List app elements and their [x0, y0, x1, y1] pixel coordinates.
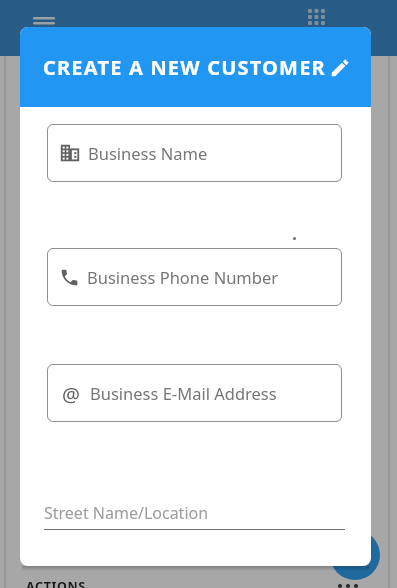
staticText: ACTIONS	[26, 578, 86, 588]
staticText: @	[62, 381, 80, 405]
staticText: Business E-Mail Address	[90, 382, 277, 404]
staticText: Street Name/Location	[44, 502, 209, 524]
button[interactable]: Business Phone Number	[47, 248, 342, 306]
button[interactable]: Business Name	[47, 124, 342, 182]
button[interactable]: CREATE A NEW CUSTOMER	[20, 27, 371, 107]
staticText: Business Name	[88, 142, 208, 164]
staticText: CREATE A NEW CUSTOMER	[43, 54, 326, 81]
button[interactable]	[330, 530, 380, 580]
button[interactable]	[307, 8, 329, 30]
button[interactable]: Street Name/Location	[44, 502, 345, 530]
button[interactable]	[33, 14, 57, 34]
staticText: Business Phone Number	[87, 266, 279, 288]
button[interactable]: @	[47, 364, 342, 422]
